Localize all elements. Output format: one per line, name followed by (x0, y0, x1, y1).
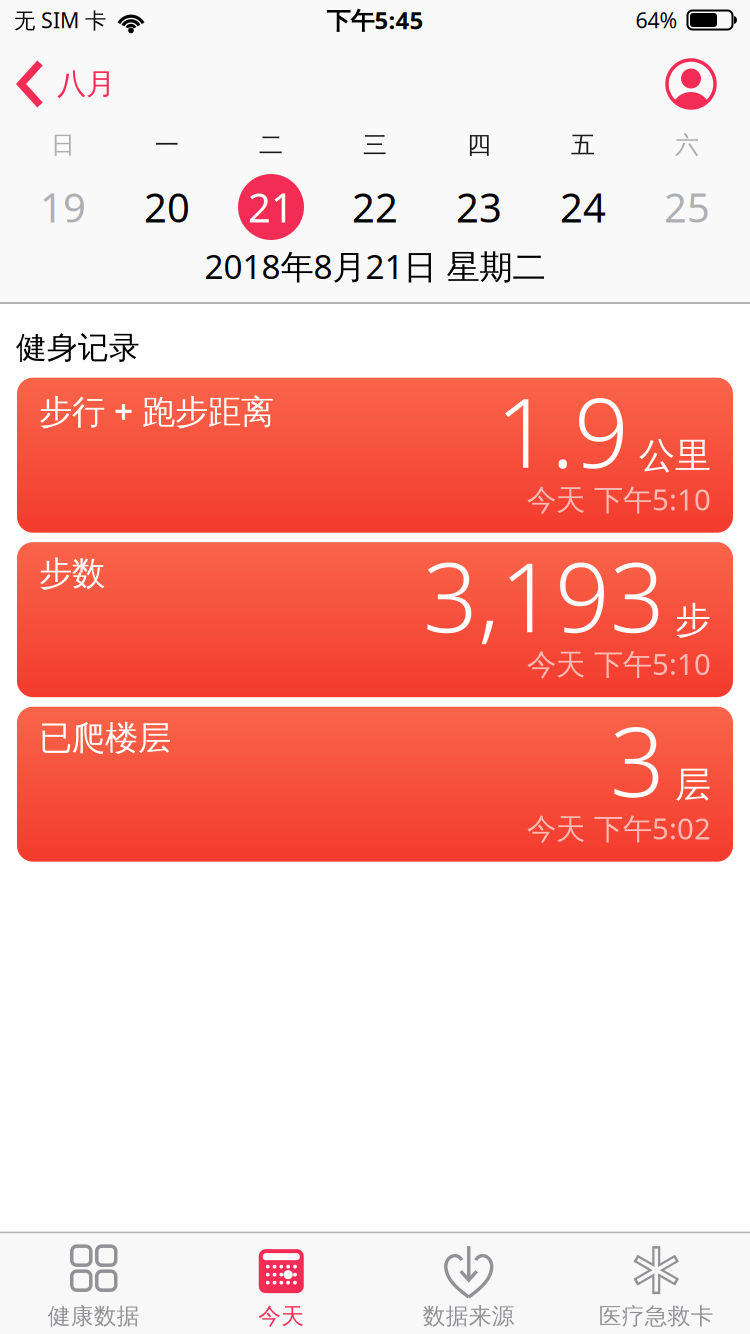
staticText: 无 SIM 卡 (14, 6, 106, 34)
staticText: 数据来源 (423, 1302, 515, 1330)
staticText: 一 (155, 130, 179, 160)
button[interactable]: 20 (115, 174, 219, 240)
button[interactable]: 已爬楼层 (17, 707, 733, 862)
staticText: 23 (456, 180, 502, 233)
button[interactable]: 19 (11, 174, 115, 240)
staticText: 今天 下午5:10 (527, 644, 711, 683)
button[interactable]: 21 (219, 174, 323, 240)
staticText: 健身记录 (16, 329, 140, 367)
button[interactable]: 健康数据 (0, 1245, 187, 1330)
staticText: 1.9 (496, 367, 629, 494)
staticText: 今天 下午5:10 (527, 480, 711, 519)
staticText: 下午5:45 (326, 4, 423, 36)
staticText: 五 (571, 130, 595, 160)
staticText: 24 (560, 180, 606, 233)
staticText: 步数 (39, 553, 105, 594)
button[interactable]: 步行 + 跑步距离 (17, 378, 733, 533)
staticText: 八月 (57, 66, 115, 102)
button[interactable]: 数据来源 (375, 1245, 562, 1330)
staticText: 3,193 (423, 531, 665, 659)
staticText: 六 (675, 130, 699, 160)
staticText: 公里 (639, 434, 711, 478)
staticText: 步 (675, 598, 711, 642)
staticText: 20 (144, 180, 190, 233)
staticText: 步行 + 跑步距离 (39, 389, 274, 433)
staticText: 二 (259, 130, 283, 160)
button[interactable]: 个人资料 (667, 60, 715, 108)
staticText: 19 (40, 180, 86, 233)
staticText: 2018年8月21日 星期二 (204, 244, 545, 288)
staticText: 64% (635, 6, 677, 34)
staticText: 今天 (258, 1302, 304, 1330)
button[interactable]: 今天 (187, 1245, 375, 1330)
staticText: 已爬楼层 (39, 718, 171, 759)
button[interactable]: 返回八月 (18, 61, 115, 107)
staticText: 今天 下午5:02 (527, 809, 711, 848)
button[interactable]: 医疗急救卡 (562, 1245, 750, 1330)
staticText: 22 (352, 180, 398, 233)
button[interactable]: 22 (323, 174, 427, 240)
staticText: 健康数据 (48, 1302, 140, 1330)
staticText: 层 (675, 763, 711, 807)
button[interactable]: 25 (635, 174, 739, 240)
staticText: 3 (610, 696, 665, 823)
button[interactable]: 步数 (17, 542, 733, 697)
staticText: 21 (248, 180, 294, 233)
staticText: 医疗急救卡 (599, 1302, 714, 1330)
staticText: 25 (664, 180, 710, 233)
button[interactable]: 24 (531, 174, 635, 240)
button[interactable]: 23 (427, 174, 531, 240)
staticText: 日 (51, 130, 75, 160)
staticText: 四 (467, 130, 491, 160)
staticText: 三 (363, 130, 387, 160)
